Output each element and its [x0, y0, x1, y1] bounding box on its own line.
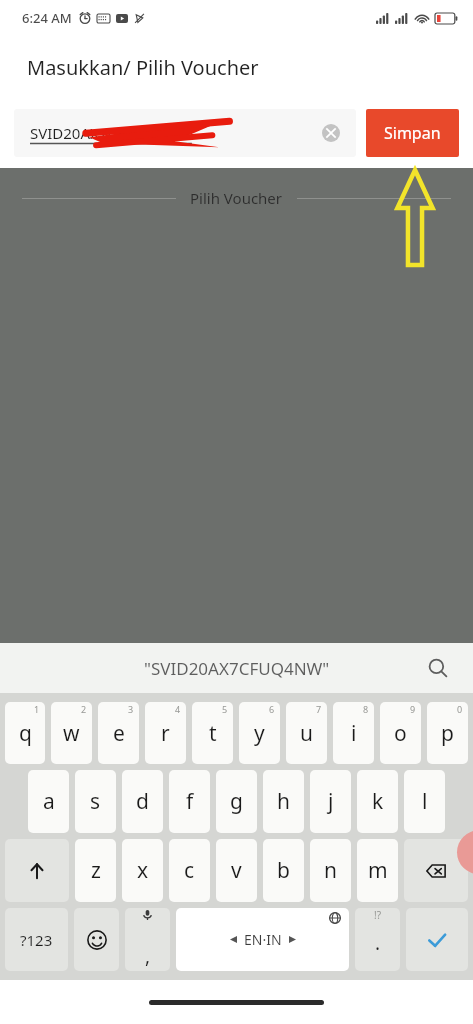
staticText: , — [145, 943, 151, 969]
staticText: z — [91, 856, 101, 885]
button[interactable]: y — [239, 702, 280, 764]
button[interactable]: o — [380, 702, 421, 764]
button[interactable]: Emoji — [74, 908, 119, 971]
button[interactable]: b — [263, 839, 304, 902]
button[interactable]: ?123 — [5, 908, 68, 971]
staticText: 3 — [128, 703, 134, 715]
button[interactable]: c — [169, 839, 210, 902]
staticText: 1 — [34, 703, 40, 715]
staticText: m — [368, 856, 388, 885]
button[interactable]: v — [216, 839, 257, 902]
staticText: s — [90, 787, 101, 816]
button[interactable]: e — [98, 702, 139, 764]
staticText: 4 — [175, 703, 181, 715]
staticText: Pilih Voucher — [190, 188, 283, 208]
staticText: Simpan — [384, 122, 441, 144]
button[interactable]: a — [28, 770, 69, 833]
button[interactable]: r — [145, 702, 186, 764]
button[interactable]: h — [263, 770, 304, 833]
staticText: e — [113, 719, 125, 748]
button[interactable]: g — [216, 770, 257, 833]
staticText: w — [63, 719, 80, 748]
staticText: 6:24 AM — [22, 9, 72, 27]
staticText: d — [136, 787, 149, 816]
staticText: 7 — [316, 703, 322, 715]
staticText: b — [277, 856, 290, 885]
button[interactable]: k — [357, 770, 398, 833]
staticText: y — [254, 719, 265, 748]
staticText: !? — [374, 908, 382, 922]
staticText: EN·IN — [244, 930, 282, 949]
staticText: i — [351, 719, 357, 748]
button[interactable]: t — [192, 702, 233, 764]
staticText: o — [394, 719, 407, 748]
button[interactable]: Enter — [406, 908, 468, 971]
staticText: n — [324, 856, 337, 885]
button[interactable]: Shift — [5, 839, 69, 902]
staticText: ?123 — [20, 930, 53, 950]
staticText: r — [161, 719, 170, 748]
button[interactable]: x — [122, 839, 163, 902]
staticText: 5 — [222, 703, 228, 715]
staticText: t — [209, 719, 217, 748]
staticText: x — [137, 856, 149, 885]
staticText: j — [328, 787, 334, 816]
staticText: q — [19, 719, 32, 748]
staticText: SVID20AX7CFUQ4NW — [30, 123, 182, 143]
button[interactable]: l — [404, 770, 445, 833]
staticText: g — [230, 787, 243, 816]
staticText: 2 — [81, 703, 87, 715]
button[interactable]: Simpan — [366, 109, 459, 157]
staticText: a — [43, 787, 55, 816]
button[interactable]: p — [427, 702, 468, 764]
button[interactable]: j — [310, 770, 351, 833]
button[interactable]: f — [169, 770, 210, 833]
staticText: h — [277, 787, 290, 816]
staticText: "SVID20AX7CFUQ4NW" — [144, 657, 330, 680]
button[interactable]: m — [357, 839, 398, 902]
staticText: 6 — [269, 703, 275, 715]
button[interactable]: Period — [355, 908, 400, 971]
button[interactable]: n — [310, 839, 351, 902]
button[interactable]: Clear text — [320, 122, 342, 144]
staticText: l — [422, 787, 428, 816]
staticText: f — [186, 787, 194, 816]
button[interactable]: w — [51, 702, 92, 764]
staticText: v — [231, 856, 242, 885]
button[interactable]: q — [5, 702, 45, 764]
staticText: k — [372, 787, 384, 816]
button[interactable]: z — [75, 839, 116, 902]
button[interactable]: i — [333, 702, 374, 764]
staticText: Masukkan/ Pilih Voucher — [27, 54, 259, 81]
staticText: u — [300, 719, 313, 748]
staticText: 8 — [363, 703, 369, 715]
button[interactable]: Space — [176, 908, 349, 971]
button[interactable]: s — [75, 770, 116, 833]
button[interactable]: Search — [423, 653, 453, 683]
button[interactable]: d — [122, 770, 163, 833]
button[interactable]: SVID20AX7CFUQ4NW — [14, 109, 356, 157]
staticText: p — [441, 719, 454, 748]
staticText: 0 — [457, 703, 463, 715]
button[interactable]: Backspace — [404, 839, 468, 902]
button[interactable]: u — [286, 702, 327, 764]
staticText: . — [375, 930, 381, 956]
staticText: 9 — [410, 703, 416, 715]
button[interactable]: Comma, voice input — [125, 908, 170, 971]
staticText: c — [184, 856, 195, 885]
